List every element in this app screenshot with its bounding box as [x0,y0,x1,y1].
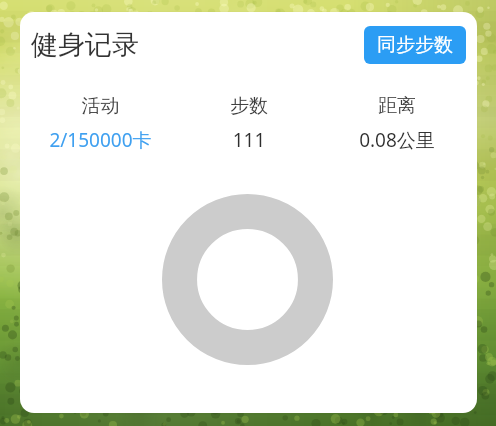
button[interactable]: 同步步数 [364,26,466,64]
staticText: 0.08公里 [323,127,471,153]
staticText: 同步步数 [377,33,453,57]
button[interactable]: 距离 [323,94,471,153]
staticText: 活动 [26,94,175,118]
button[interactable]: 活动 [26,94,175,153]
staticText: 步数 [175,94,323,118]
staticText: 距离 [323,94,471,118]
staticText: 健身记录 [31,28,139,62]
button[interactable]: 步数 [175,94,323,153]
staticText: 111 [175,127,323,153]
staticText: 2/150000卡 [26,127,175,153]
